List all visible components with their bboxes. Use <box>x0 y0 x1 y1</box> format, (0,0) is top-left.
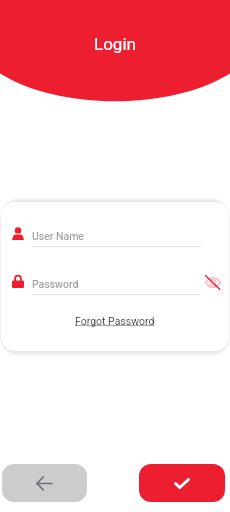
button[interactable]: Submit <box>139 464 225 502</box>
button[interactable]: Toggle password visibility <box>201 269 225 293</box>
staticText: Login <box>94 34 136 54</box>
button[interactable]: Forgot Password <box>75 315 155 327</box>
staticText: Password <box>32 278 79 290</box>
button[interactable]: Back <box>2 464 87 502</box>
staticText: User Name <box>32 230 84 242</box>
